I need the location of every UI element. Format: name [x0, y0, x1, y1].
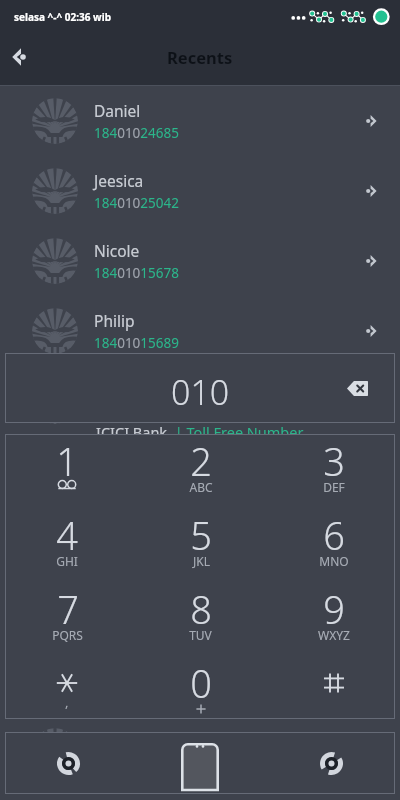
staticText: , [65, 693, 69, 711]
staticText: WXYZ [318, 627, 350, 643]
staticText: 7 [57, 583, 79, 635]
staticText: DEF [323, 479, 345, 495]
button[interactable]: Gabriel [0, 646, 400, 716]
button[interactable]: Olivia [0, 436, 400, 506]
button[interactable]: Dialpad [175, 738, 225, 788]
staticText: 4 [56, 509, 78, 561]
staticText: 18401025042 [94, 194, 179, 212]
staticText: 18401015678 [94, 264, 179, 282]
staticText: GHI [56, 553, 78, 569]
staticText: Eleanor [94, 730, 150, 751]
staticText: Recents [167, 46, 233, 68]
button[interactable]: Call details [342, 226, 400, 296]
button[interactable]: 0 [134, 657, 267, 719]
staticText: 3 [323, 435, 345, 487]
button[interactable]: 2 [134, 435, 267, 509]
button[interactable]: Samuel [0, 366, 400, 436]
button[interactable]: Thomas [0, 506, 400, 576]
button[interactable] [267, 657, 400, 719]
staticText: Jeesica [94, 170, 144, 191]
button[interactable]: , [0, 657, 134, 719]
button[interactable]: 8 [134, 583, 267, 657]
button[interactable]: Back [1, 40, 35, 74]
staticText: Nicole [94, 240, 140, 261]
button[interactable]: 5 [134, 509, 267, 583]
staticText: selasa ^-^ 02:36 wib [14, 10, 111, 24]
button[interactable]: 4 [0, 509, 134, 583]
staticText: JKL [193, 553, 210, 569]
staticText: Philip [94, 310, 135, 331]
staticText: PQRS [52, 627, 83, 643]
button[interactable]: Daniel [0, 86, 400, 156]
button[interactable]: Contacts [45, 740, 91, 786]
button[interactable]: Favorites [308, 740, 354, 786]
button[interactable]: 7 [0, 583, 134, 657]
button[interactable]: 3 [267, 435, 400, 509]
staticText: Daniel [94, 100, 141, 121]
button[interactable]: Call details [342, 156, 400, 226]
staticText: 1 [56, 435, 78, 487]
button[interactable]: Philip [0, 296, 400, 366]
staticText: ICICI Bank | Toll Free Number [96, 422, 304, 442]
button[interactable]: Backspace [340, 371, 374, 405]
staticText: 9 [323, 583, 345, 635]
staticText: 18401022187 [94, 404, 179, 422]
button[interactable]: 1 [0, 435, 134, 509]
staticText: 010 [171, 369, 230, 415]
button[interactable]: Eleanor [0, 716, 400, 786]
button[interactable]: 9 [267, 583, 400, 657]
button[interactable]: Call details [342, 576, 400, 646]
staticText: 18401024685 [94, 124, 179, 142]
button[interactable]: Call details [342, 646, 400, 716]
button[interactable]: Call details [342, 506, 400, 576]
staticText: 2 [190, 435, 212, 487]
staticText: 8 [190, 583, 212, 635]
button[interactable]: Call details [342, 86, 400, 156]
button[interactable]: Jeesica [0, 156, 400, 226]
button[interactable]: Call details [342, 366, 400, 436]
button[interactable]: Call details [342, 716, 400, 786]
staticText: MNO [319, 553, 349, 569]
staticText: TUV [189, 627, 212, 643]
staticText: 18401015689 [94, 334, 179, 352]
button[interactable]: Nicole [0, 226, 400, 296]
staticText: 5 [190, 509, 212, 561]
staticText: 0 [190, 657, 212, 709]
button[interactable]: 6 [267, 509, 400, 583]
staticText: 6 [323, 509, 345, 561]
button[interactable]: Call details [342, 436, 400, 506]
button[interactable]: Martha [0, 576, 400, 646]
button[interactable]: Call details [342, 296, 400, 366]
staticText: ABC [189, 479, 213, 495]
